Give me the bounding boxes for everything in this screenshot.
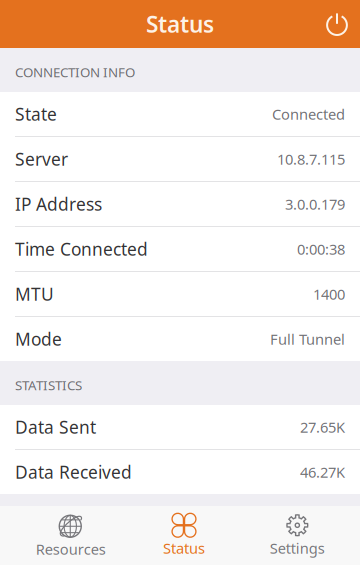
staticText: Settings <box>270 538 325 558</box>
staticText: STATISTICS <box>15 376 82 394</box>
staticText: Data Sent <box>15 415 96 438</box>
staticText: IP Address <box>15 192 102 215</box>
button[interactable]: Server <box>0 137 360 181</box>
staticText: 0:00:38 <box>297 239 345 259</box>
button[interactable]: IP Address <box>0 182 360 226</box>
staticText: MTU <box>15 282 54 305</box>
button[interactable]: Data Sent <box>0 405 360 449</box>
button[interactable]: Time Connected <box>0 227 360 271</box>
staticText: Data Received <box>15 460 132 483</box>
button[interactable]: State <box>0 92 360 136</box>
staticText: 46.27K <box>300 462 345 482</box>
staticText: 27.65K <box>300 417 345 437</box>
staticText: Full Tunnel <box>270 329 345 349</box>
button[interactable]: Status <box>127 506 241 565</box>
staticText: Server <box>15 147 68 170</box>
button[interactable]: Resources <box>14 506 127 565</box>
staticText: State <box>15 102 57 125</box>
staticText: Resources <box>36 539 106 559</box>
staticText: 3.0.0.179 <box>285 194 345 214</box>
staticText: 10.8.7.115 <box>277 149 345 169</box>
staticText: Connected <box>272 104 345 124</box>
staticText: Status <box>163 538 205 558</box>
staticText: Time Connected <box>15 237 148 260</box>
button[interactable]: Data Received <box>0 450 360 494</box>
staticText: Mode <box>15 327 62 350</box>
staticText: CONNECTION INFO <box>15 63 135 81</box>
button[interactable]: MTU <box>0 272 360 316</box>
staticText: Status <box>146 9 214 39</box>
staticText: 1400 <box>313 284 345 304</box>
button[interactable]: Settings <box>241 506 354 565</box>
button[interactable]: Disconnect <box>314 0 360 48</box>
button[interactable]: Mode <box>0 317 360 361</box>
